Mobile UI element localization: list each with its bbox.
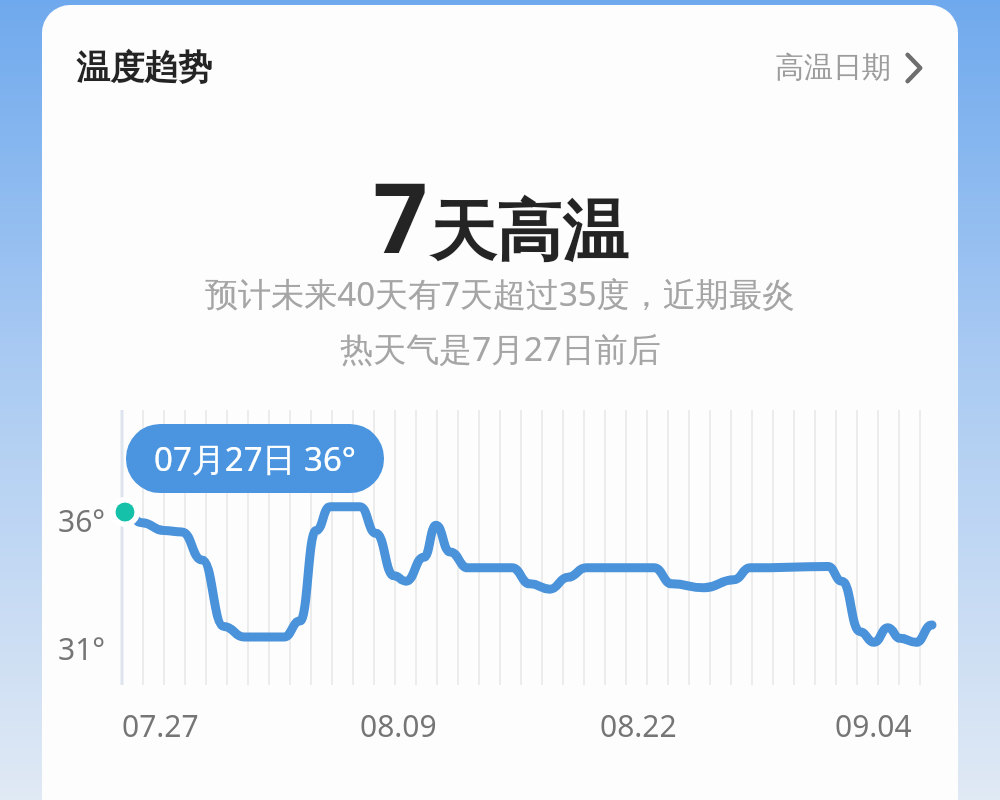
- staticText: 08.22: [600, 705, 677, 746]
- staticText: 高温日期: [775, 49, 891, 86]
- staticText: 07.27: [122, 705, 199, 746]
- staticText: 36°: [58, 500, 106, 541]
- other: 高温日期: [905, 53, 922, 83]
- staticText: 7: [373, 150, 428, 281]
- staticText: 09.04: [835, 705, 912, 746]
- staticText: 温度趋势: [76, 46, 212, 89]
- staticText: 31°: [58, 628, 106, 669]
- staticText: 08.09: [360, 705, 437, 746]
- staticText: 热天气是7月27日前后: [340, 326, 661, 371]
- staticText: 天高温: [430, 190, 628, 273]
- button[interactable]: 07月27日 36°: [126, 424, 384, 493]
- button[interactable]: 高温日期: [771, 41, 926, 94]
- staticText: 07月27日 36°: [154, 436, 356, 481]
- staticText: 预计未来40天有7天超过35度，近期最炎: [205, 271, 795, 316]
